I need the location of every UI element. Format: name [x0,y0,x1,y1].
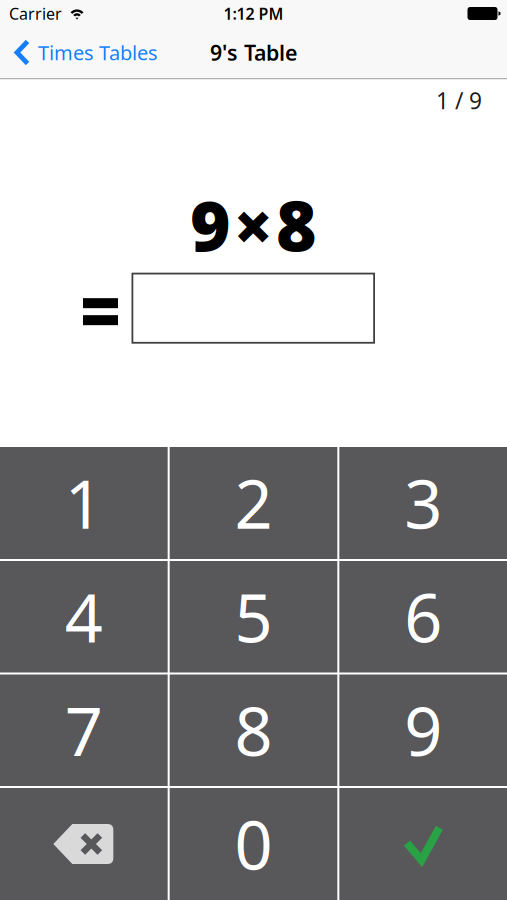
staticText: 9 [404,686,442,774]
button[interactable]: 6 [339,561,507,672]
staticText: 2 [234,459,272,547]
staticText: Times Tables [38,39,158,66]
button[interactable]: 2 [170,447,337,559]
button[interactable] [339,788,507,900]
staticText: 1:12 PM [223,3,283,24]
button[interactable]: 5 [170,561,337,672]
staticText: Carrier [9,3,62,24]
staticText: 9's Table [210,38,297,67]
button[interactable]: 9 [339,674,507,786]
staticText: 1 / 9 [436,85,482,116]
button[interactable]: 3 [339,447,507,559]
staticText: 7 [65,686,103,774]
staticText: 6 [404,572,442,661]
button[interactable]: 0 [170,788,337,900]
staticText: 4 [65,572,103,661]
button[interactable]: Times Tables [0,39,158,66]
staticText: 3 [404,459,442,547]
staticText: 8 [234,686,272,774]
staticText: 9×8 [190,179,317,271]
button[interactable]: 8 [170,674,337,786]
button[interactable]: 1 [0,447,168,559]
staticText: 5 [234,572,272,661]
button[interactable]: 7 [0,674,168,786]
staticText: 1 [65,459,103,547]
button[interactable] [131,273,375,344]
staticText: 0 [234,800,272,888]
button[interactable] [0,788,168,900]
button[interactable]: 4 [0,561,168,672]
